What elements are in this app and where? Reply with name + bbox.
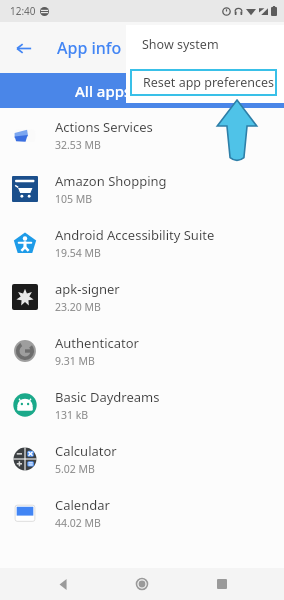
button[interactable]: Calendar bbox=[0, 486, 284, 540]
button[interactable]: Reset app preferences bbox=[132, 71, 275, 94]
staticText: 5.02 MB bbox=[55, 462, 95, 476]
staticText: 19.54 MB bbox=[55, 246, 101, 260]
staticText: 9.31 MB bbox=[55, 354, 95, 368]
button[interactable]: Back bbox=[46, 568, 80, 600]
staticText: Reset app preferences bbox=[143, 74, 274, 91]
staticText: All apps bbox=[75, 81, 132, 101]
staticText: 105 MB bbox=[55, 192, 93, 206]
staticText: Authenticator bbox=[55, 334, 139, 352]
staticText: Amazon Shopping bbox=[55, 172, 167, 190]
button[interactable]: Android Accessibility Suite bbox=[0, 216, 284, 270]
button[interactable]: Back bbox=[10, 35, 36, 61]
staticText: Android Accessibility Suite bbox=[55, 226, 215, 244]
button[interactable]: Calculator bbox=[0, 432, 284, 486]
staticText: App info bbox=[57, 37, 122, 59]
staticText: Calculator bbox=[55, 442, 117, 460]
button[interactable]: Basic Daydreams bbox=[0, 378, 284, 432]
staticText: Show system bbox=[142, 36, 219, 53]
staticText: Calendar bbox=[55, 496, 110, 514]
staticText: 131 kB bbox=[55, 408, 89, 422]
staticText: 44.02 MB bbox=[55, 516, 101, 530]
button[interactable]: Recents bbox=[205, 568, 239, 600]
button[interactable]: apk-signer bbox=[0, 270, 284, 324]
button[interactable]: Amazon Shopping bbox=[0, 162, 284, 216]
button[interactable]: Actions Services bbox=[0, 108, 284, 162]
button[interactable]: Authenticator bbox=[0, 324, 284, 378]
staticText: 32.53 MB bbox=[55, 138, 101, 152]
staticText: apk-signer bbox=[55, 280, 120, 298]
staticText: Basic Daydreams bbox=[55, 388, 160, 406]
button[interactable]: Show system bbox=[126, 25, 284, 63]
button[interactable]: Home bbox=[125, 568, 159, 600]
staticText: Actions Services bbox=[55, 118, 153, 136]
staticText: 12:40 bbox=[10, 4, 36, 18]
staticText: 23.20 MB bbox=[55, 300, 101, 314]
